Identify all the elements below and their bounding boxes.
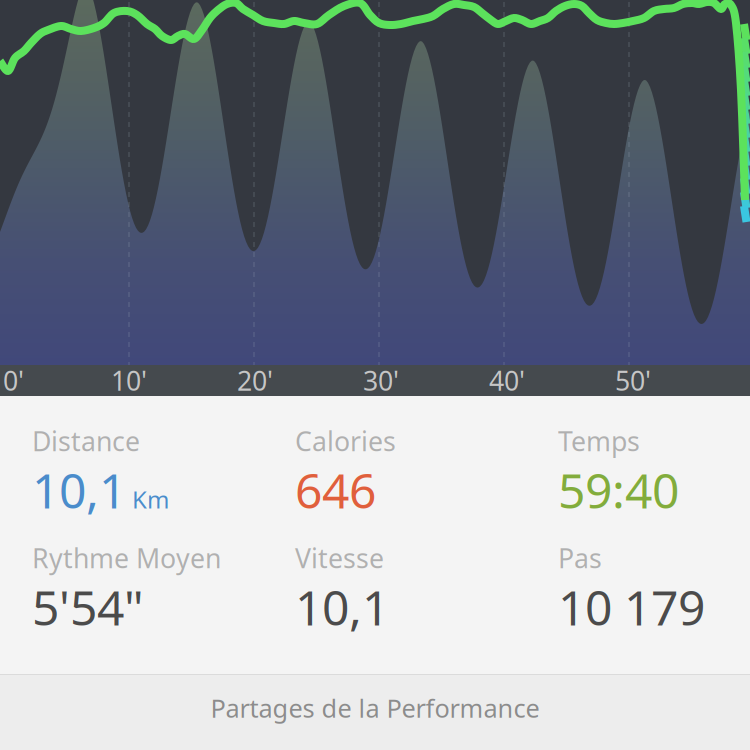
staticText: 10' xyxy=(111,363,147,398)
staticText: Pas xyxy=(558,540,602,576)
staticText: 10,1 xyxy=(295,575,389,639)
staticText: 5'54" xyxy=(32,575,144,639)
button[interactable]: Partages de la Performance xyxy=(0,674,750,750)
staticText: 10,1 xyxy=(32,458,126,522)
staticText: Temps xyxy=(558,423,640,459)
staticText: 40' xyxy=(489,363,525,398)
staticText: 59:40 xyxy=(558,458,679,522)
staticText: Calories xyxy=(295,423,396,459)
staticText: Vitesse xyxy=(295,540,384,576)
staticText: Rythme Moyen xyxy=(32,540,221,576)
staticText: 10 179 xyxy=(558,575,705,639)
staticText: 30' xyxy=(363,363,399,398)
staticText: Partages de la Performance xyxy=(210,691,539,725)
staticText: 0' xyxy=(3,363,24,398)
staticText: 50' xyxy=(615,363,651,398)
staticText: Km xyxy=(132,483,169,515)
staticText: 20' xyxy=(237,363,273,398)
staticText: 646 xyxy=(295,458,376,522)
staticText: Distance xyxy=(32,423,140,459)
